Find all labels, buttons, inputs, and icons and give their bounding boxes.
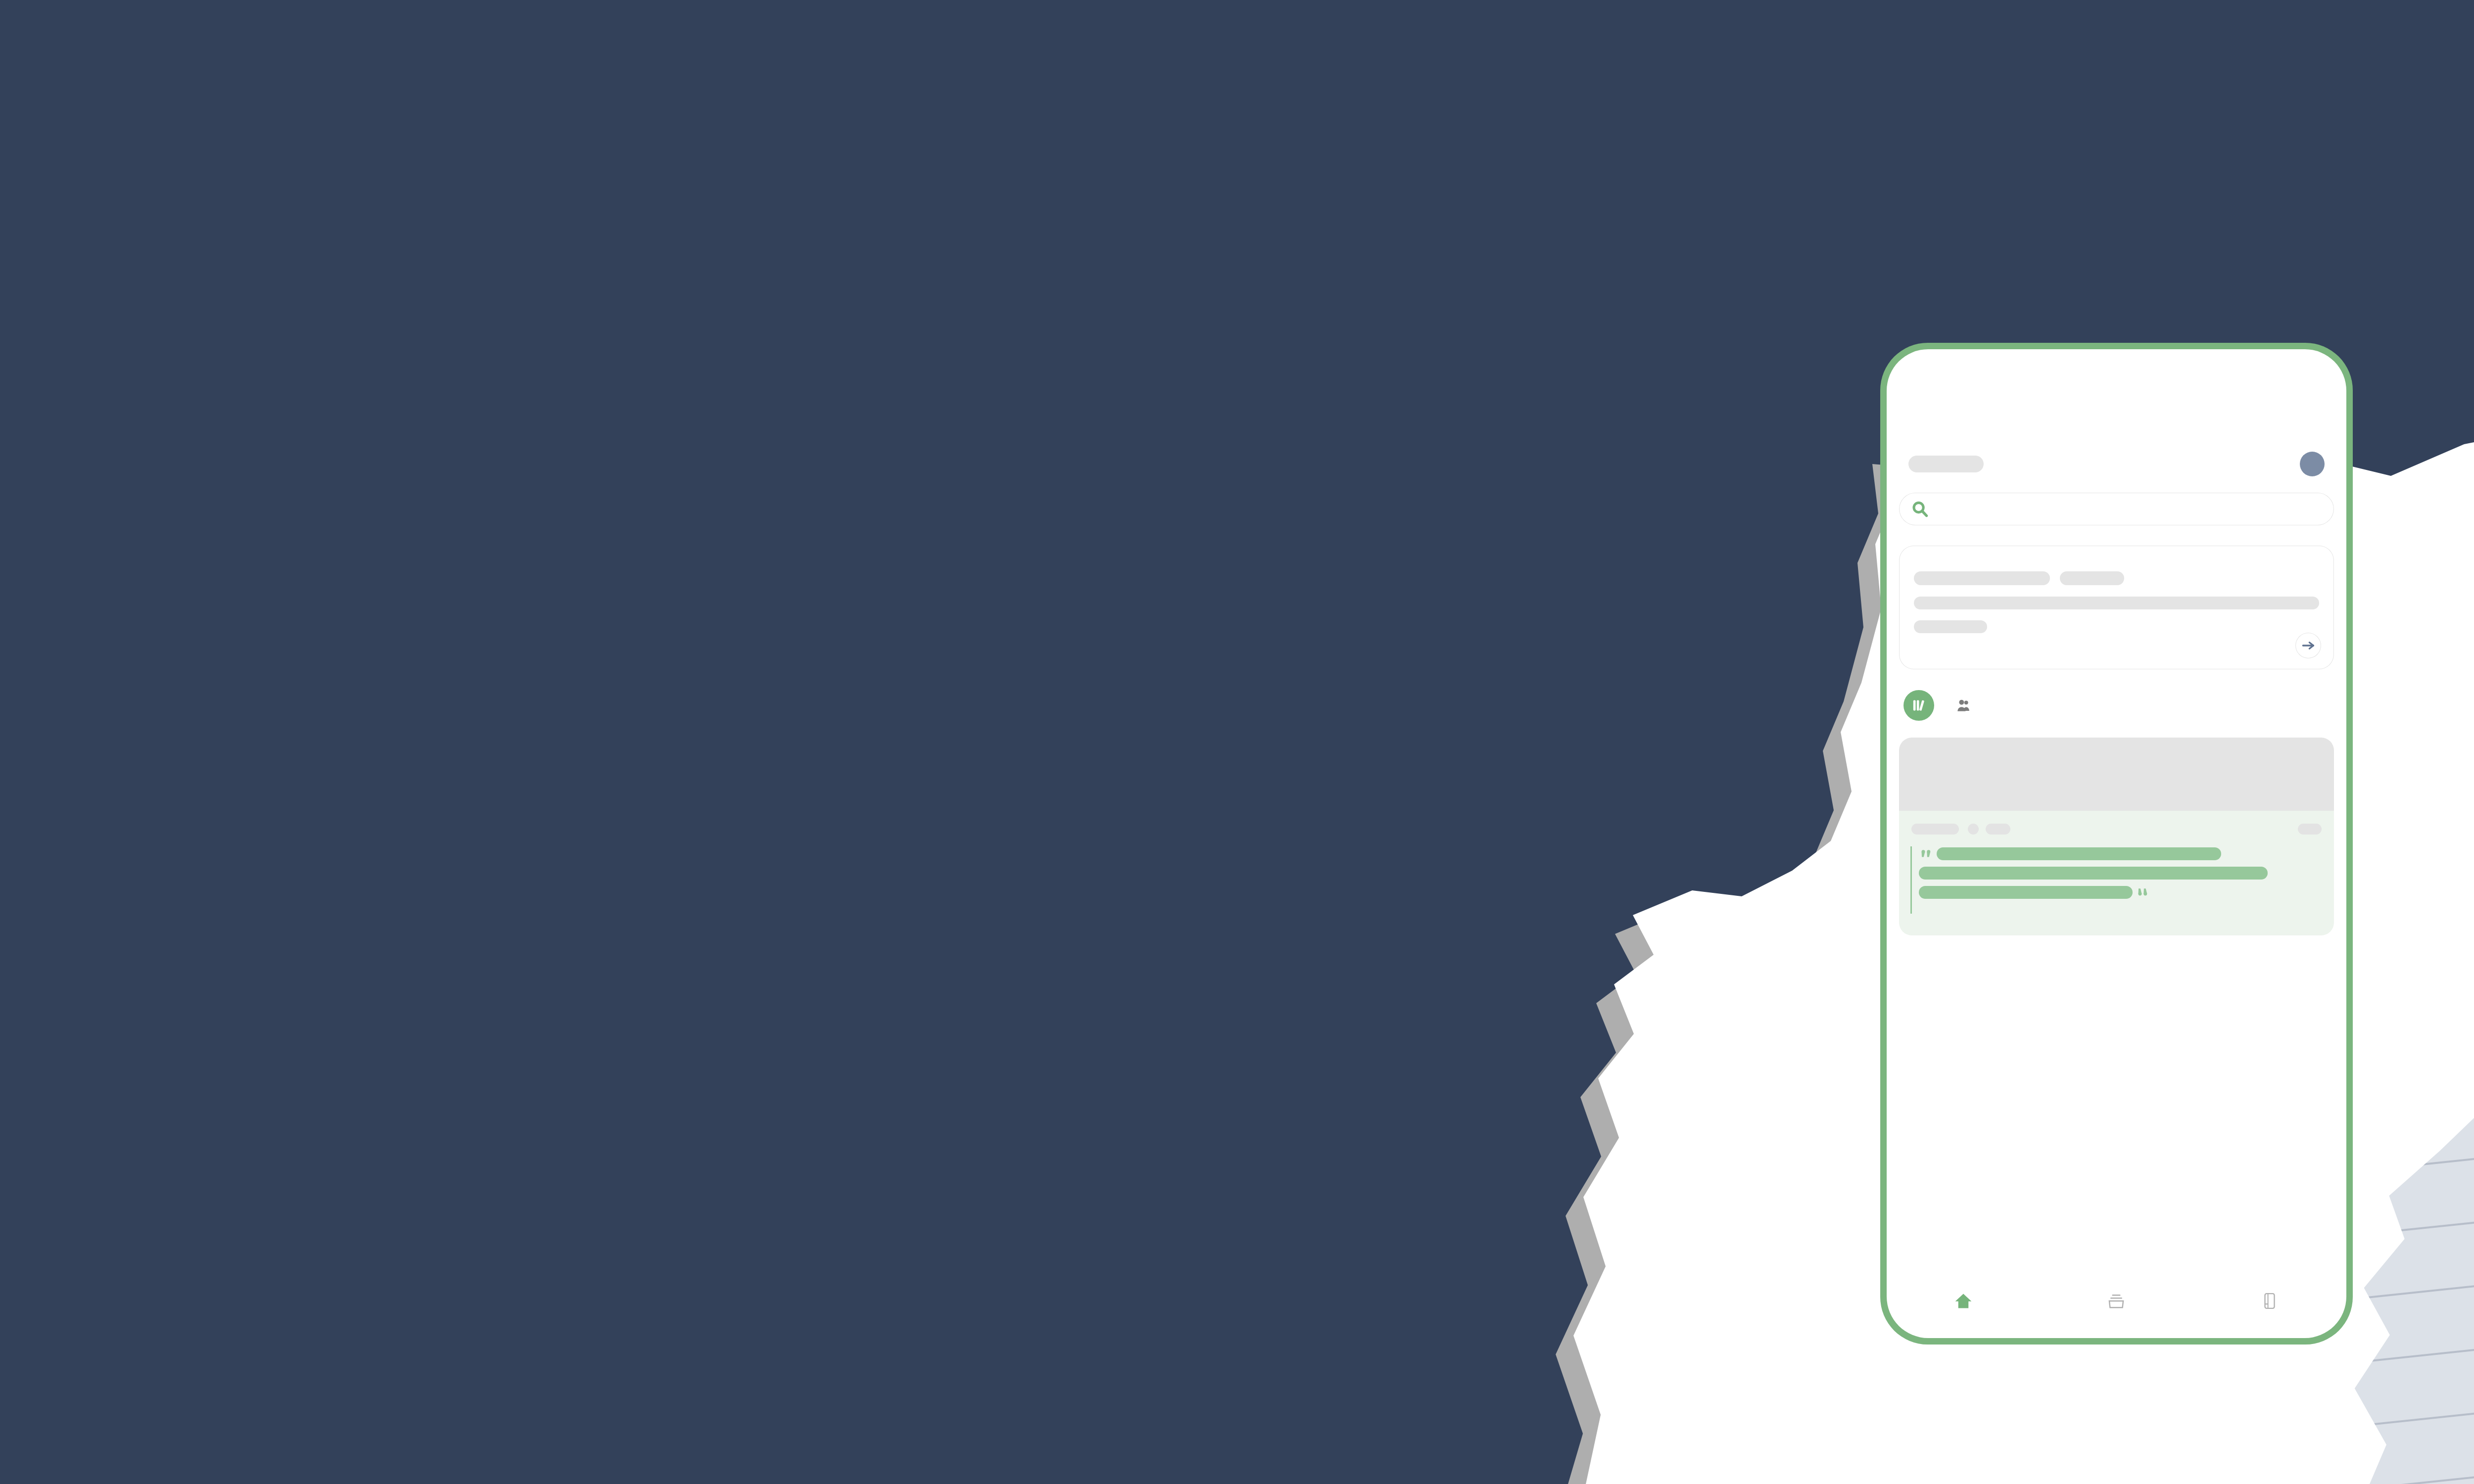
button[interactable]: Open <box>1899 546 2334 669</box>
button[interactable]: Book <box>2193 1264 2346 1338</box>
button[interactable]: Open <box>2295 633 2321 658</box>
button[interactable]: Home <box>1887 1264 2040 1338</box>
button[interactable]: Search <box>1899 493 2334 525</box>
button[interactable]: Groups <box>1952 694 1975 717</box>
button[interactable]: Profile <box>2300 452 2325 476</box>
button[interactable]: Shelf <box>2040 1264 2193 1338</box>
button[interactable]: Library <box>1903 690 1934 721</box>
button[interactable] <box>1899 738 2334 935</box>
